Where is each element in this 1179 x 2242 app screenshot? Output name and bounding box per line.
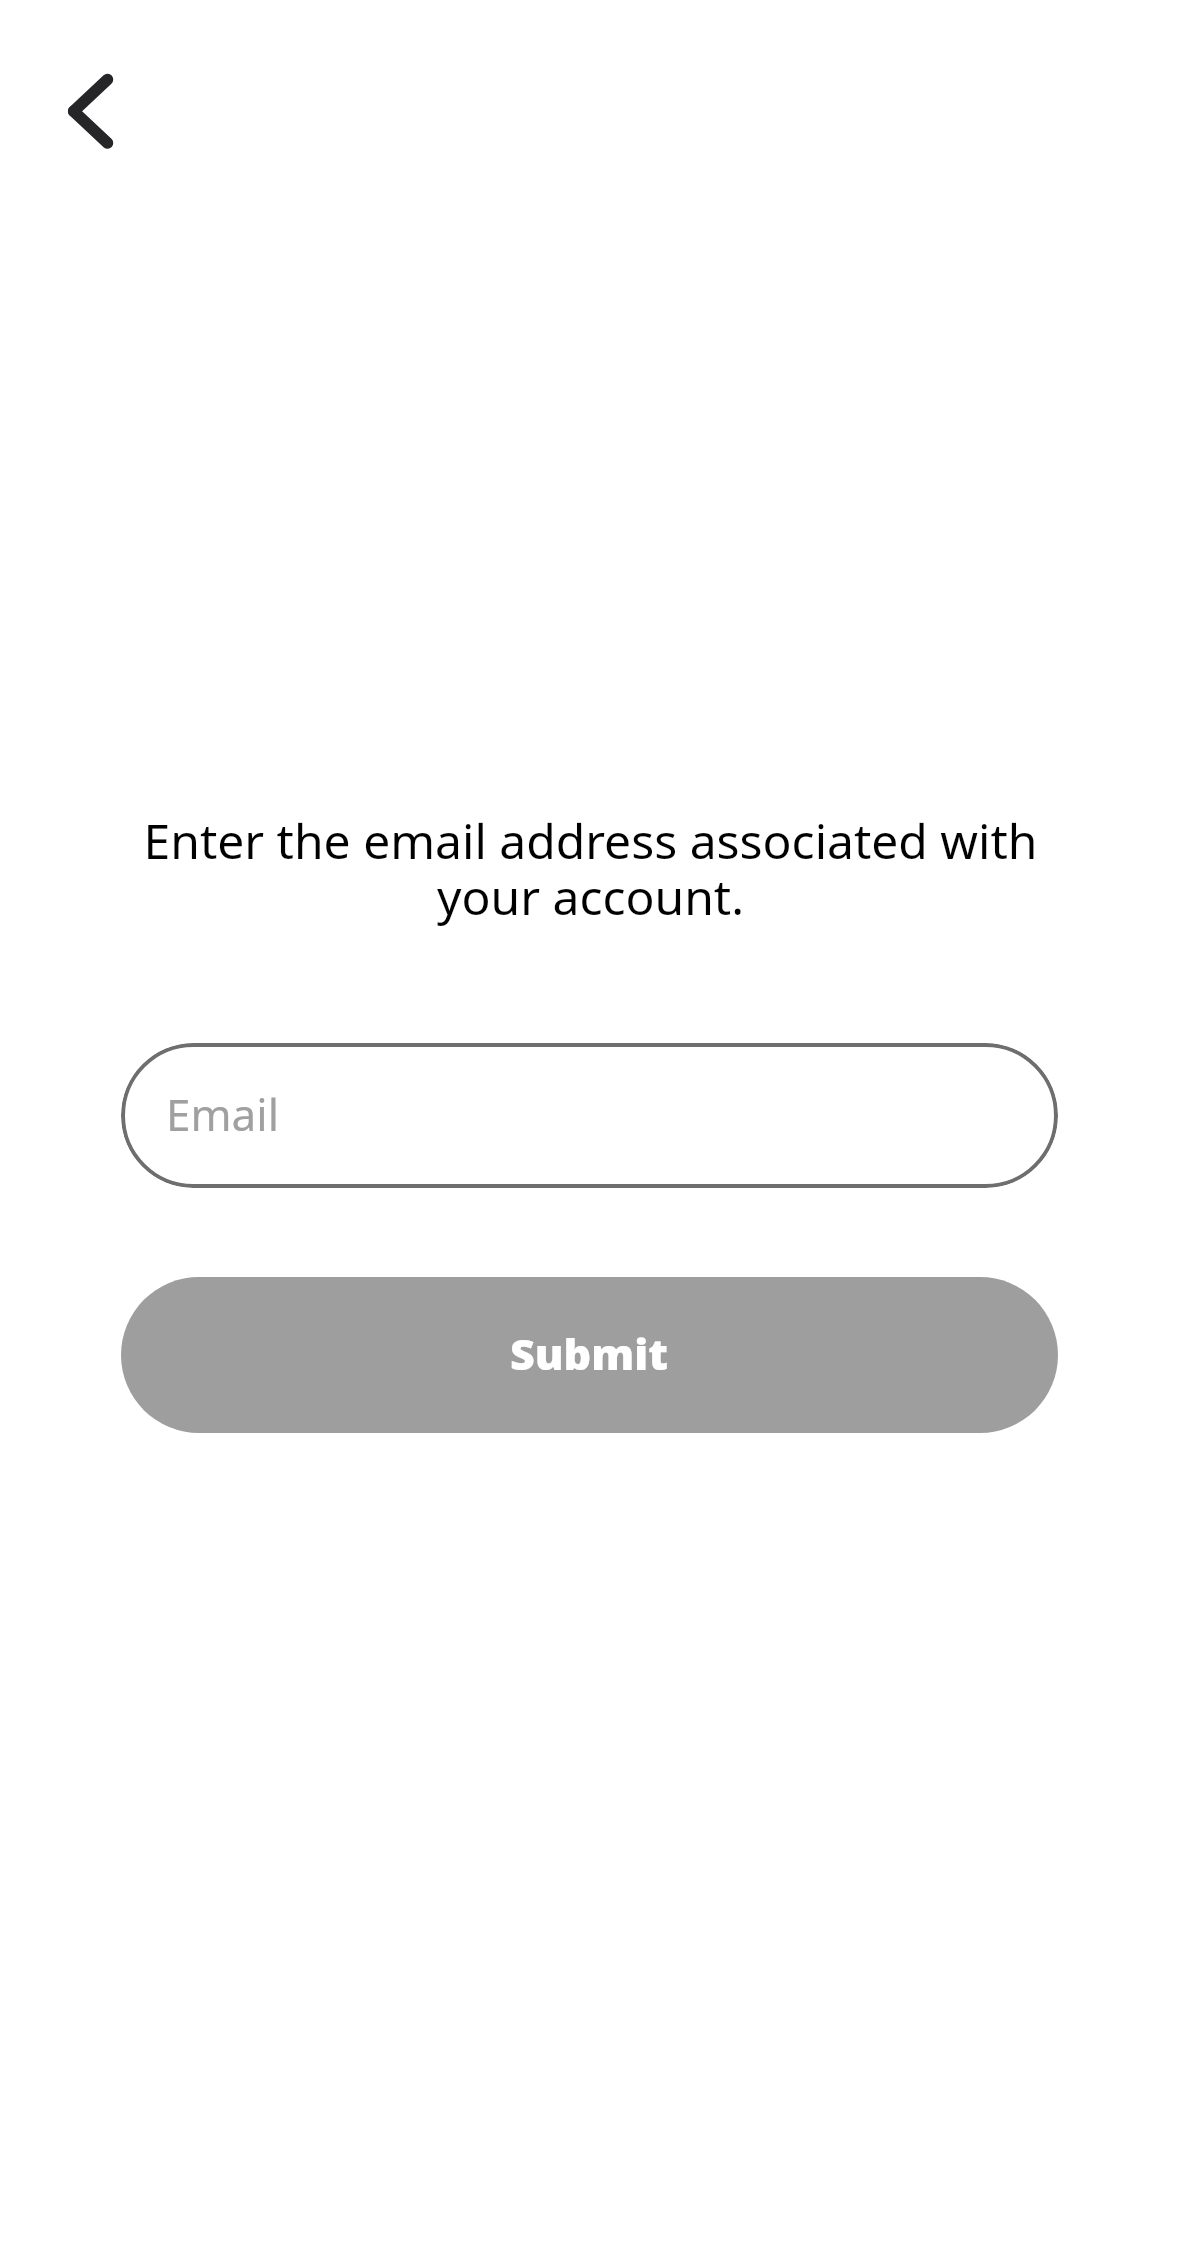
staticText: Enter the email address associated with … — [135, 808, 1046, 929]
staticText: Email — [166, 1084, 279, 1144]
button[interactable]: Back — [30, 63, 126, 159]
button[interactable]: Email — [121, 1043, 1058, 1188]
staticText: Submit — [510, 1324, 669, 1383]
button[interactable]: Submit — [121, 1277, 1058, 1433]
